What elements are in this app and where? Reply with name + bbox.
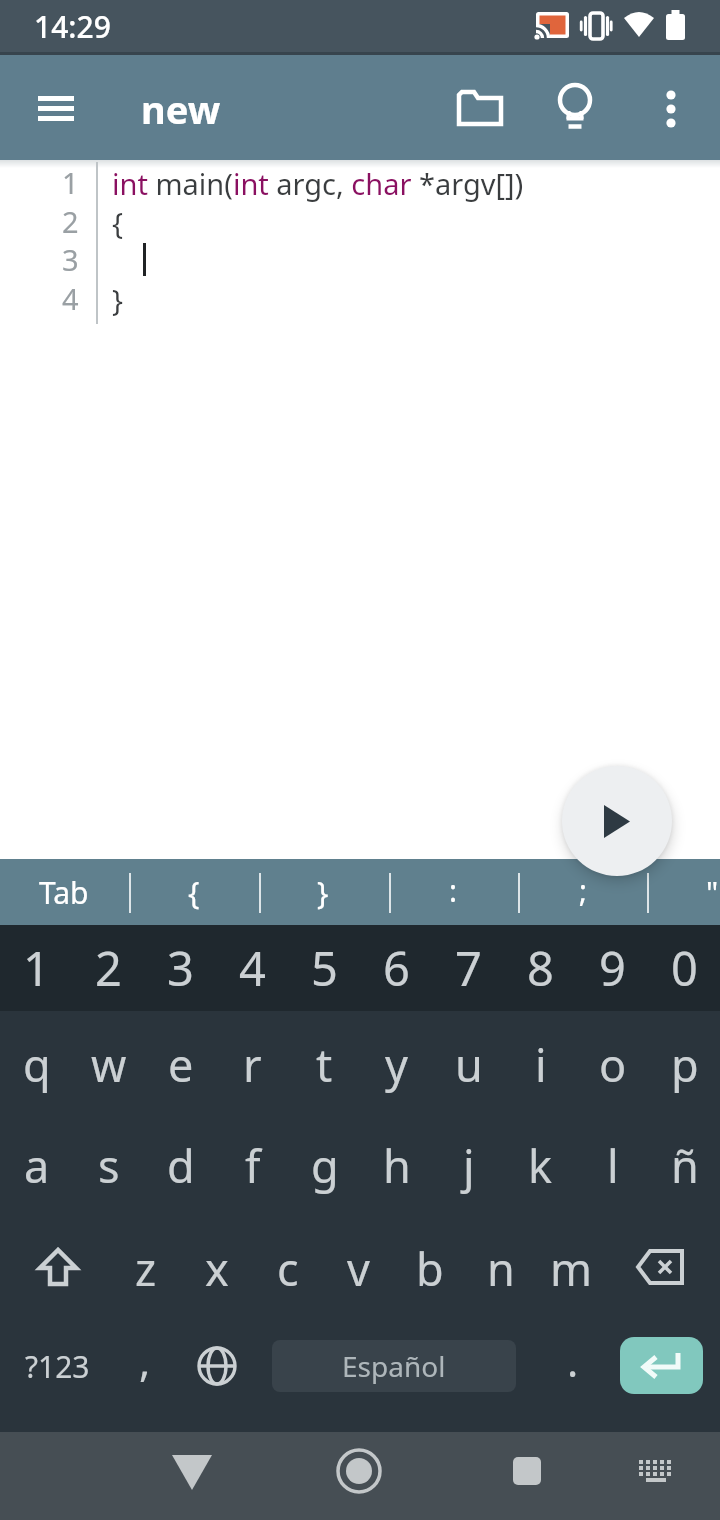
button[interactable]	[194, 1343, 240, 1389]
button[interactable]: .	[552, 1318, 594, 1402]
button[interactable]: h	[374, 1120, 419, 1210]
button[interactable]: ñ	[662, 1120, 707, 1210]
button[interactable]: ?123	[0, 1336, 117, 1396]
button[interactable]: 2	[85, 921, 132, 1015]
staticText: k	[528, 1135, 553, 1196]
button[interactable]: n	[478, 1223, 523, 1313]
button[interactable]: 3	[157, 921, 204, 1015]
staticText: b	[416, 1238, 444, 1299]
button[interactable]	[33, 1244, 83, 1292]
button[interactable]: x	[194, 1223, 239, 1313]
staticText: 3	[62, 240, 79, 279]
button[interactable]	[168, 1450, 216, 1494]
staticText: j	[463, 1135, 475, 1196]
button[interactable]	[452, 82, 508, 134]
staticText: ;	[579, 870, 588, 911]
button[interactable]: ,	[124, 1318, 166, 1402]
staticText: f	[245, 1135, 261, 1196]
button[interactable]: k	[518, 1120, 563, 1210]
staticText: o	[599, 1034, 627, 1095]
button[interactable]	[335, 1447, 383, 1495]
staticText: 8	[527, 936, 554, 1000]
button[interactable]: 4	[229, 921, 276, 1015]
button[interactable]: 8	[517, 921, 564, 1015]
button[interactable]: d	[158, 1120, 203, 1210]
button[interactable]: 0	[661, 921, 708, 1015]
staticText: 2	[62, 202, 79, 241]
button[interactable]	[620, 1337, 703, 1394]
button[interactable]: s	[86, 1120, 131, 1210]
staticText: x	[205, 1238, 229, 1299]
staticText: t	[316, 1034, 333, 1095]
staticText: m	[550, 1238, 593, 1299]
staticText: w	[91, 1034, 127, 1095]
staticText: s	[98, 1135, 120, 1196]
button[interactable]: Español	[272, 1340, 516, 1392]
button[interactable]: y	[374, 1019, 419, 1109]
button[interactable]: r	[230, 1019, 275, 1109]
staticText: 4	[239, 936, 266, 1000]
staticText: 9	[599, 936, 626, 1000]
button[interactable]: m	[549, 1223, 594, 1313]
button[interactable]: e	[158, 1019, 203, 1109]
button[interactable]: c	[265, 1223, 310, 1313]
button[interactable]: o	[590, 1019, 635, 1109]
button[interactable]	[645, 82, 697, 134]
staticText: a	[24, 1135, 50, 1196]
staticText: y	[385, 1034, 408, 1095]
staticText: ñ	[671, 1135, 699, 1196]
button[interactable]: z	[123, 1223, 168, 1313]
button[interactable]: Tab	[19, 862, 109, 922]
button[interactable]	[634, 1246, 686, 1288]
staticText: new	[141, 83, 221, 135]
staticText: 1	[23, 936, 50, 1000]
button[interactable]: p	[662, 1019, 707, 1109]
staticText: Español	[342, 1347, 446, 1385]
button[interactable]: 6	[373, 921, 420, 1015]
staticText: 7	[455, 936, 482, 1000]
button[interactable]: u	[446, 1019, 491, 1109]
staticText: {	[112, 203, 124, 242]
staticText: }	[317, 872, 329, 913]
staticText: c	[277, 1238, 299, 1299]
button[interactable]: q	[14, 1019, 59, 1109]
button[interactable]: w	[86, 1019, 131, 1109]
button[interactable]: }	[303, 862, 343, 922]
button[interactable]: 1	[13, 921, 60, 1015]
button[interactable]	[503, 1447, 551, 1495]
button[interactable]: j	[446, 1120, 491, 1210]
staticText: Tab	[39, 872, 89, 913]
button[interactable]: 7	[445, 921, 492, 1015]
staticText: "	[706, 872, 719, 913]
button[interactable]: b	[407, 1223, 452, 1313]
button[interactable]: a	[14, 1120, 59, 1210]
button[interactable]: "	[692, 862, 720, 922]
button[interactable]: i	[518, 1019, 563, 1109]
button[interactable]: {	[174, 862, 214, 922]
button[interactable]: 5	[301, 921, 348, 1015]
staticText: q	[23, 1034, 51, 1095]
staticText: u	[455, 1034, 483, 1095]
staticText: p	[671, 1034, 699, 1095]
button[interactable]	[26, 85, 86, 133]
button[interactable]	[549, 80, 601, 136]
staticText: ,	[139, 1332, 151, 1389]
button[interactable]: :	[433, 860, 473, 920]
staticText: .	[567, 1332, 579, 1389]
staticText: }	[112, 280, 124, 319]
button[interactable]: f	[230, 1120, 275, 1210]
staticText: z	[135, 1238, 157, 1299]
staticText: 0	[671, 936, 698, 1000]
staticText: l	[607, 1135, 619, 1196]
staticText: 5	[311, 936, 338, 1000]
button[interactable]: 9	[589, 921, 636, 1015]
staticText: r	[243, 1034, 262, 1095]
button[interactable]	[634, 1448, 678, 1492]
button[interactable]	[562, 766, 672, 876]
staticText: int main(int argc, char *argv[])	[112, 164, 524, 203]
button[interactable]: g	[302, 1120, 347, 1210]
button[interactable]: ;	[563, 860, 603, 920]
button[interactable]: l	[590, 1120, 635, 1210]
button[interactable]: v	[336, 1223, 381, 1313]
button[interactable]: t	[302, 1019, 347, 1109]
